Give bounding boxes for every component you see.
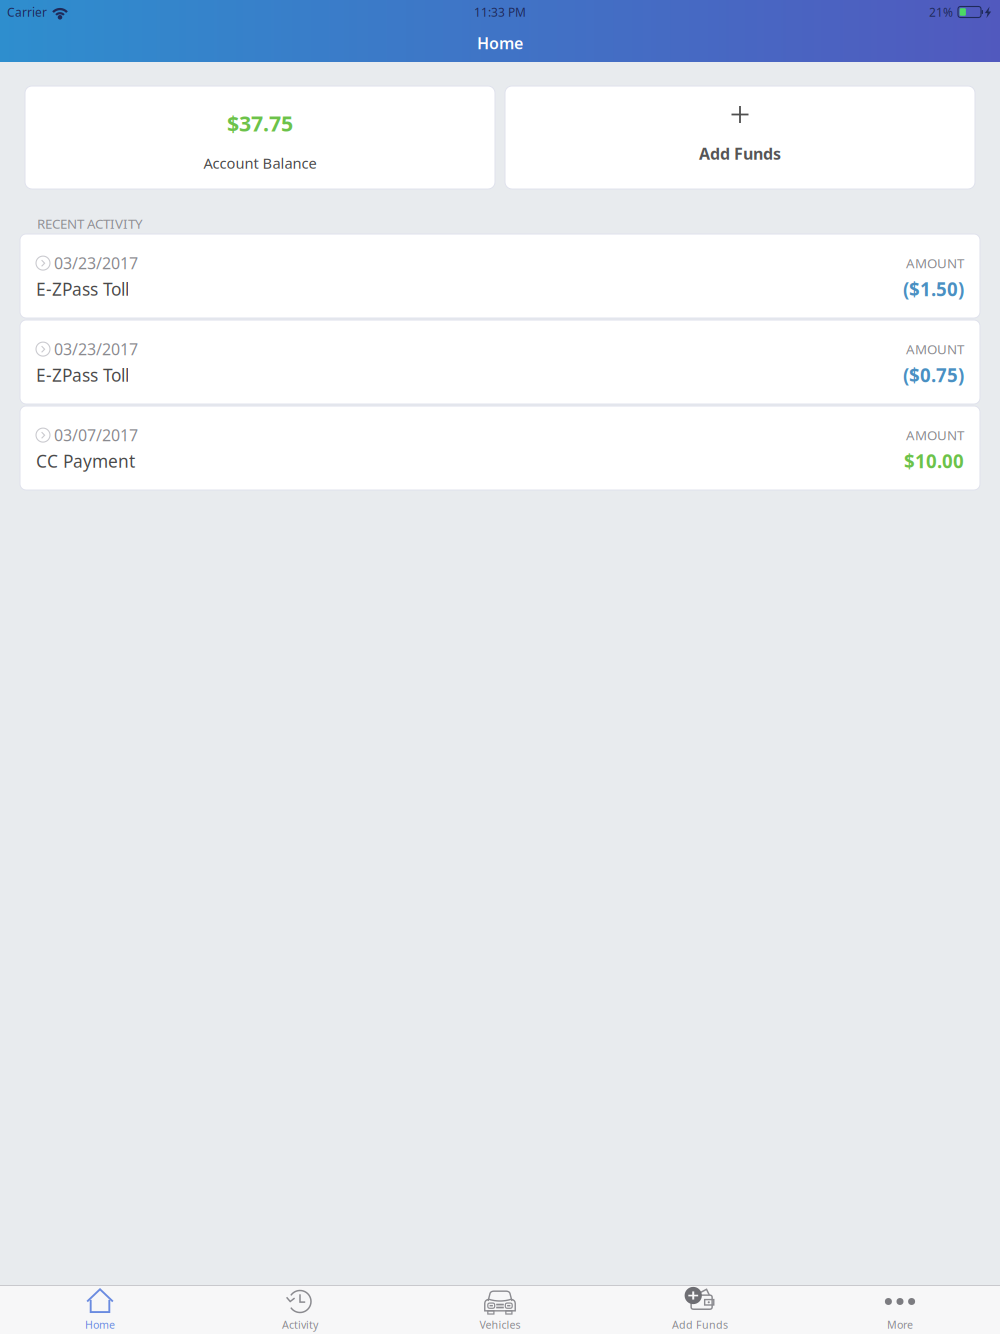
staticText: Carrier bbox=[7, 4, 47, 20]
staticText: AMOUNT bbox=[906, 254, 964, 272]
button[interactable]: More bbox=[800, 1286, 1000, 1334]
button[interactable]: Add Funds bbox=[600, 1286, 800, 1334]
staticText: ($0.75) bbox=[903, 363, 964, 387]
staticText: AMOUNT bbox=[906, 340, 964, 358]
staticText: AMOUNT bbox=[906, 426, 964, 444]
staticText: 21% bbox=[929, 4, 953, 20]
staticText: Activity bbox=[282, 1317, 318, 1332]
staticText: CC Payment bbox=[36, 450, 135, 473]
staticText: RECENT ACTIVITY bbox=[37, 215, 143, 232]
staticText: 03/23/2017 bbox=[54, 338, 138, 360]
staticText: 11:33 PM bbox=[474, 4, 526, 20]
staticText: E-ZPass Toll bbox=[36, 364, 129, 387]
staticText: Home bbox=[477, 32, 523, 54]
staticText: Vehicles bbox=[479, 1317, 520, 1332]
staticText: Home bbox=[85, 1317, 115, 1332]
staticText: E-ZPass Toll bbox=[36, 278, 129, 301]
staticText: 03/07/2017 bbox=[54, 424, 138, 446]
button[interactable]: Vehicles bbox=[400, 1286, 600, 1334]
button[interactable]: Activity bbox=[200, 1286, 400, 1334]
staticText: Account Balance bbox=[203, 153, 316, 173]
button[interactable]: 03/07/2017 bbox=[20, 406, 980, 490]
staticText: $37.75 bbox=[227, 109, 293, 137]
button[interactable]: Add Funds bbox=[505, 86, 975, 189]
staticText: Add Funds bbox=[672, 1317, 728, 1332]
button[interactable]: 03/23/2017 bbox=[20, 320, 980, 404]
staticText: 03/23/2017 bbox=[54, 252, 138, 274]
button[interactable]: 03/23/2017 bbox=[20, 234, 980, 318]
staticText: $10.00 bbox=[904, 449, 964, 473]
staticText: Add Funds bbox=[699, 143, 781, 164]
staticText: More bbox=[887, 1317, 913, 1332]
staticText: ($1.50) bbox=[903, 277, 964, 301]
button[interactable]: $37.75 bbox=[25, 86, 495, 189]
button[interactable]: Home bbox=[0, 1286, 200, 1334]
